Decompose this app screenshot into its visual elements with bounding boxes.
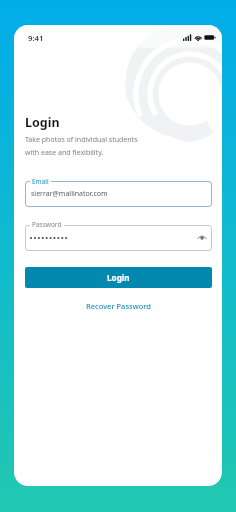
staticText: sierrar@mallinator.com: [31, 189, 108, 199]
staticText: Password: [32, 220, 62, 229]
button[interactable]: Show password: [25, 225, 212, 251]
staticText: Login: [25, 114, 60, 131]
button[interactable]: Recover Password: [25, 299, 212, 313]
staticText: Take photos of individual students with …: [25, 135, 138, 157]
button[interactable]: Show password: [197, 233, 207, 243]
staticText: Login: [107, 272, 130, 283]
button[interactable]: sierrar@mallinator.com: [25, 181, 212, 207]
staticText: Recover Password: [86, 301, 152, 311]
staticText: Email: [32, 177, 49, 186]
staticText: 9:41: [28, 33, 44, 44]
button[interactable]: Login: [25, 267, 212, 288]
